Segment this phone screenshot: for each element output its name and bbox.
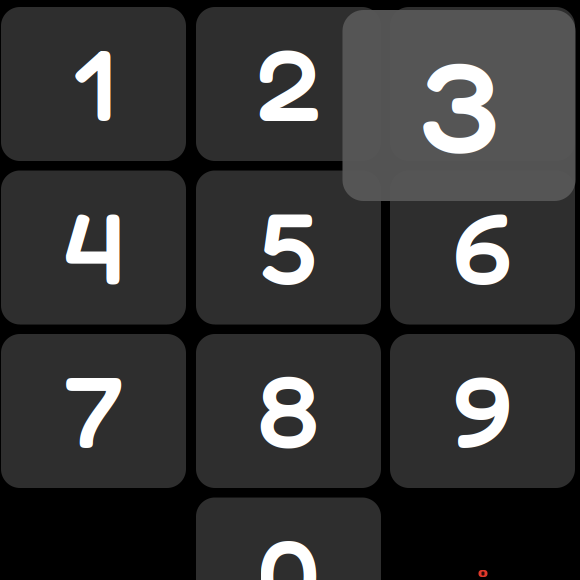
button[interactable]: 2 (196, 7, 381, 161)
staticText: 5 (260, 186, 317, 307)
staticText: 6 (453, 186, 512, 307)
button[interactable]: 4 (1, 170, 186, 324)
staticText: 4 (63, 186, 124, 307)
button[interactable]: 0 (196, 497, 381, 580)
staticText: 3 (419, 30, 499, 181)
staticText: 0 (257, 513, 319, 580)
button[interactable] (390, 7, 575, 161)
button[interactable]: 5 (196, 170, 381, 324)
button[interactable]: 6 (390, 170, 575, 324)
button[interactable]: 3 (342, 10, 575, 201)
button[interactable]: 1 (1, 7, 186, 161)
staticText: 8 (257, 349, 319, 470)
staticText: 1 (72, 22, 114, 143)
button[interactable]: Delete (478, 570, 487, 577)
staticText: 7 (63, 349, 123, 470)
button[interactable]: 7 (1, 334, 186, 488)
staticText: 2 (256, 22, 320, 143)
button[interactable]: 9 (390, 334, 575, 488)
button[interactable]: 8 (196, 334, 381, 488)
staticText: 9 (453, 349, 512, 470)
